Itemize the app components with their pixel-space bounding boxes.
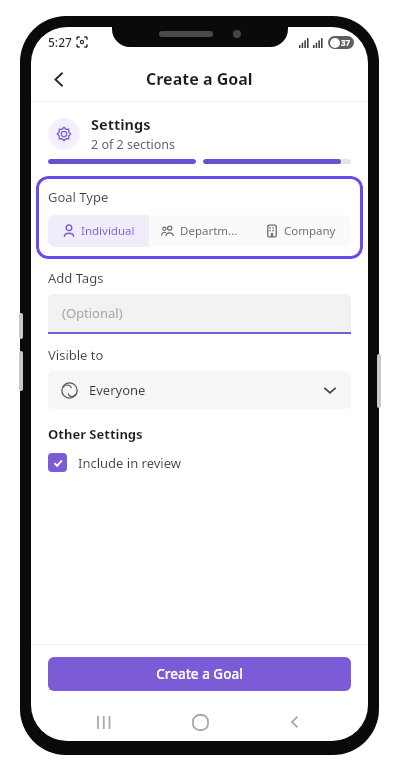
staticText: 2 of 2 sections: [91, 136, 175, 153]
button[interactable]: (Optional): [48, 294, 351, 334]
staticText: Everyone: [89, 381, 146, 399]
button[interactable]: Home: [178, 703, 222, 741]
staticText: Individual: [81, 223, 135, 239]
staticText: Settings: [91, 114, 151, 134]
staticText: Company: [284, 223, 336, 239]
staticText: Goal Type: [48, 188, 109, 206]
button[interactable]: Departm...: [149, 215, 250, 247]
staticText: Create a Goal: [156, 665, 243, 683]
button[interactable]: Back: [273, 703, 317, 741]
button[interactable]: Everyone: [48, 371, 351, 409]
staticText: 5:27: [48, 34, 72, 50]
staticText: 37: [341, 37, 351, 48]
button[interactable]: Include in review: [48, 453, 181, 472]
staticText: Add Tags: [48, 269, 104, 287]
staticText: Departm...: [180, 223, 238, 239]
button[interactable]: Back: [39, 59, 79, 99]
staticText: Visible to: [48, 346, 104, 364]
button[interactable]: Individual: [48, 215, 149, 247]
button[interactable]: Recents: [82, 703, 126, 741]
staticText: (Optional): [62, 304, 123, 322]
staticText: Include in review: [78, 454, 181, 472]
staticText: Create a Goal: [146, 68, 253, 90]
staticText: Other Settings: [48, 425, 143, 443]
button[interactable]: Company: [250, 215, 351, 247]
button[interactable]: Create a Goal: [48, 657, 351, 691]
